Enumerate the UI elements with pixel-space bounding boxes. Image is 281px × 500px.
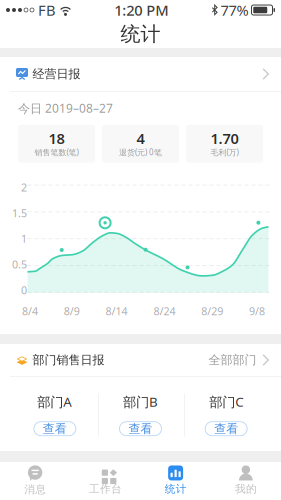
staticText: 1.70 — [210, 128, 238, 148]
staticText: 销售笔数(笔) — [34, 147, 78, 157]
button[interactable]: 我的 — [211, 461, 281, 500]
staticText: 0.5 — [12, 257, 27, 271]
staticText: 8/24 — [153, 304, 175, 318]
button[interactable]: 消息 — [0, 461, 70, 500]
staticText: 查看 — [43, 421, 67, 436]
staticText: 我的 — [235, 482, 257, 495]
staticText: 全部部门 — [208, 353, 256, 367]
staticText: 4 — [136, 128, 144, 148]
staticText: 8/9 — [64, 304, 80, 318]
button[interactable]: 统计 — [140, 461, 211, 500]
staticText: 0 — [21, 283, 27, 297]
staticText: 部门C — [209, 393, 243, 410]
staticText: 查看 — [214, 421, 238, 436]
staticText: 部门A — [37, 393, 72, 410]
button[interactable]: 查看 — [119, 422, 161, 436]
staticText: 2 — [21, 180, 27, 194]
staticText: 77% — [220, 0, 248, 20]
button[interactable]: 经营日报 — [0, 57, 281, 91]
staticText: 退货(元) 0笔 — [119, 147, 162, 157]
staticText: 8/29 — [201, 304, 223, 318]
staticText: 1.5 — [12, 206, 27, 220]
staticText: 毛利(万) — [210, 147, 238, 157]
button[interactable]: 工作台 — [70, 461, 140, 500]
staticText: 今日 2019–08–27 — [18, 100, 113, 116]
staticText: 1 — [21, 232, 27, 246]
staticText: 统计 — [120, 22, 160, 46]
staticText: 经营日报 — [32, 67, 80, 81]
button[interactable]: 查看 — [34, 422, 76, 436]
staticText: 查看 — [128, 421, 152, 436]
staticText: FB — [38, 0, 56, 20]
staticText: 部门B — [123, 393, 158, 410]
staticText: 消息 — [24, 483, 46, 496]
staticText: 部门销售日报 — [32, 353, 104, 367]
staticText: 8/4 — [22, 304, 38, 318]
staticText: 9/8 — [249, 304, 265, 318]
staticText: 8/14 — [106, 304, 128, 318]
staticText: 工作台 — [89, 482, 122, 495]
staticText: 18 — [48, 128, 64, 148]
staticText: 统计 — [165, 482, 187, 495]
button[interactable]: 部门销售日报 — [0, 344, 281, 376]
button[interactable]: 查看 — [205, 422, 247, 436]
staticText: 1:20 PM — [114, 0, 168, 20]
